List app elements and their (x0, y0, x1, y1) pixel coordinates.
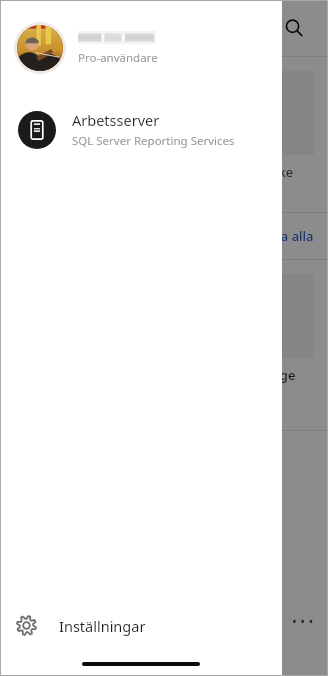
staticText: Pro-användare (78, 50, 158, 66)
staticText: Arbetsserver (72, 110, 160, 130)
staticText: Inställningar (59, 616, 146, 636)
staticText: Retail Analysis Marke (164, 163, 294, 181)
button[interactable]: Sök (276, 10, 312, 46)
staticText: Visa alla (263, 227, 314, 245)
staticText: Retail Analysis Usage (164, 366, 296, 384)
button[interactable]: Inställningar (0, 603, 282, 648)
button[interactable]: Arbetsserver (0, 104, 282, 155)
other: Inställningar (16, 615, 37, 636)
staticText: SQL Server Reporting Services (72, 133, 235, 149)
button[interactable]: Pro-användare (0, 18, 282, 78)
staticText: • • • (292, 612, 314, 630)
